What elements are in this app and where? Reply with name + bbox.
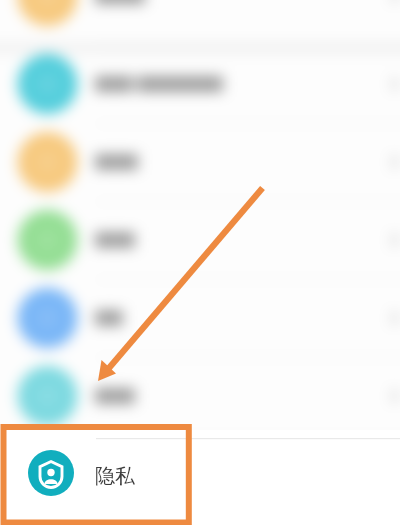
other: Highlight bbox=[0, 0, 400, 525]
staticText: 隐私 bbox=[95, 464, 135, 489]
button[interactable]: 隐私 bbox=[0, 430, 400, 525]
